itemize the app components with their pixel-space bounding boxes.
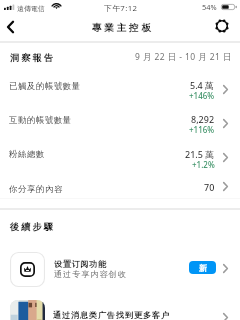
button[interactable] xyxy=(0,248,240,292)
staticText: 通过消息类广告找到更多客户 xyxy=(53,310,171,320)
staticText: 5.4 萬 xyxy=(190,79,215,91)
staticText: 專業主控板 xyxy=(92,22,154,34)
staticText: 洞察報告 xyxy=(10,52,55,64)
staticText: +116% xyxy=(189,124,215,135)
staticText: 粉絲總數 xyxy=(9,149,45,160)
staticText: +146% xyxy=(189,90,215,101)
staticText: 下午7:12 xyxy=(104,3,138,14)
staticText: 8,292 xyxy=(191,113,215,125)
button[interactable] xyxy=(0,172,240,206)
staticText: 9 月 22 日 - 10 月 21 日 xyxy=(135,51,232,63)
staticText: +1.2% xyxy=(192,159,215,170)
staticText: 通过专享内容创收 xyxy=(54,269,127,279)
staticText: 70 xyxy=(204,181,215,193)
button[interactable]: 新 xyxy=(189,261,216,274)
button[interactable]: Settings xyxy=(209,13,235,39)
button[interactable] xyxy=(0,296,240,320)
staticText: 後續步驟 xyxy=(10,221,55,233)
staticText: 互動的帳號數量 xyxy=(9,115,72,126)
button[interactable] xyxy=(0,103,240,137)
button[interactable] xyxy=(0,69,240,103)
staticText: 54% xyxy=(202,2,217,12)
staticText: 已觸及的帳號數量 xyxy=(9,81,81,92)
button[interactable]: Back xyxy=(0,14,20,40)
staticText: 新 xyxy=(199,263,207,273)
button[interactable] xyxy=(0,137,240,171)
staticText: 遠傳電信 xyxy=(17,4,45,13)
staticText: 你分享的內容 xyxy=(9,184,63,195)
staticText: 21.5 萬 xyxy=(185,148,215,160)
staticText: 设置订阅功能 xyxy=(54,259,108,269)
